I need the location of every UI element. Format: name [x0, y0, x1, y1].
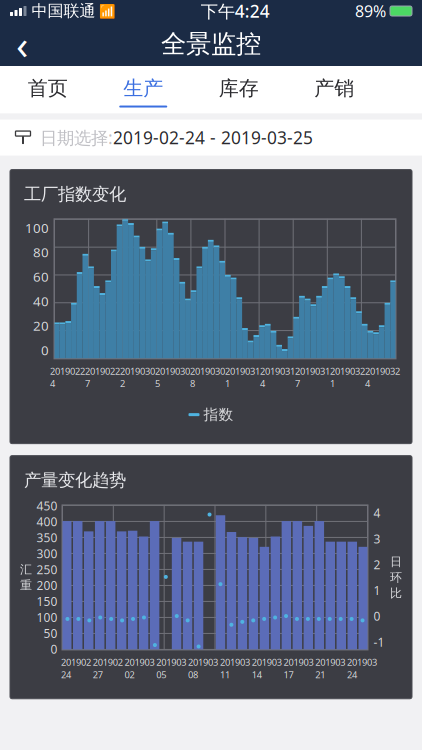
staticText: 100: [25, 219, 49, 237]
staticText: 20190305: [156, 656, 186, 681]
staticText: 2: [373, 557, 380, 572]
staticText: 250: [36, 561, 57, 577]
staticText: 350: [36, 530, 57, 545]
button[interactable]: 库存: [191, 66, 286, 114]
staticText: 0: [50, 641, 57, 657]
button[interactable]: 生产: [95, 66, 191, 114]
staticText: 工厂指数变化: [24, 184, 126, 205]
staticText: 450: [36, 498, 57, 514]
staticText: 20190314: [252, 656, 282, 681]
staticText: 20190302: [120, 365, 155, 390]
staticText: 0: [373, 608, 380, 624]
staticText: 1: [373, 582, 380, 598]
staticText: 20190314: [260, 365, 295, 390]
button[interactable]: 首页: [0, 66, 95, 114]
staticText: 中国联通: [26, 1, 95, 21]
staticText: 20190308: [188, 656, 218, 681]
staticText: 下午4:24: [201, 0, 270, 22]
staticText: 300: [36, 546, 57, 561]
staticText: 日期选择:: [40, 126, 113, 149]
staticText: 重: [20, 578, 32, 593]
staticText: 20190324: [365, 365, 400, 390]
staticText: 20190311: [220, 656, 250, 681]
staticText: 4: [373, 505, 380, 521]
staticText: 📶: [95, 2, 115, 20]
staticText: ‹: [16, 17, 28, 70]
staticText: 20190227: [93, 656, 123, 681]
staticText: 150: [36, 593, 57, 609]
staticText: 20190227: [85, 365, 120, 390]
staticText: 首页: [28, 76, 68, 101]
staticText: 20190321: [315, 656, 345, 681]
staticText: 3: [373, 531, 380, 547]
staticText: 200: [36, 577, 57, 593]
staticText: 40: [33, 292, 49, 310]
staticText: 0: [41, 341, 49, 359]
staticText: 20190317: [295, 365, 330, 390]
staticText: 库存: [219, 76, 259, 101]
staticText: 20190324: [347, 656, 377, 681]
staticText: 环: [390, 570, 402, 585]
staticText: 20190224: [61, 656, 91, 681]
staticText: 产销: [314, 76, 354, 101]
button[interactable]: 产销: [286, 66, 382, 114]
staticText: 2019-02-24 - 2019-03-25: [113, 126, 313, 149]
staticText: 80: [33, 243, 49, 261]
staticText: 50: [43, 625, 57, 641]
staticText: 20190305: [155, 365, 190, 390]
staticText: 日: [390, 554, 402, 569]
staticText: 产量变化趋势: [24, 470, 126, 491]
staticText: -1: [373, 634, 384, 650]
staticText: 汇: [20, 562, 32, 577]
staticText: 20: [33, 317, 49, 334]
button[interactable]: 日期选择:: [0, 120, 422, 156]
staticText: 20190302: [124, 656, 154, 681]
staticText: 全景监控: [161, 28, 261, 59]
staticText: 比: [390, 586, 402, 600]
button[interactable]: Back: [0, 22, 44, 66]
staticText: 60: [33, 268, 49, 285]
staticText: 20190308: [190, 365, 225, 390]
staticText: 400: [36, 514, 57, 530]
staticText: 20190317: [283, 656, 313, 681]
staticText: 89%: [355, 0, 386, 22]
staticText: 指数: [203, 406, 233, 424]
staticText: 20190321: [330, 365, 365, 390]
staticText: 生产: [123, 76, 163, 101]
staticText: 100: [36, 609, 57, 625]
staticText: 20190311: [225, 365, 260, 390]
staticText: 20190224: [50, 365, 85, 390]
